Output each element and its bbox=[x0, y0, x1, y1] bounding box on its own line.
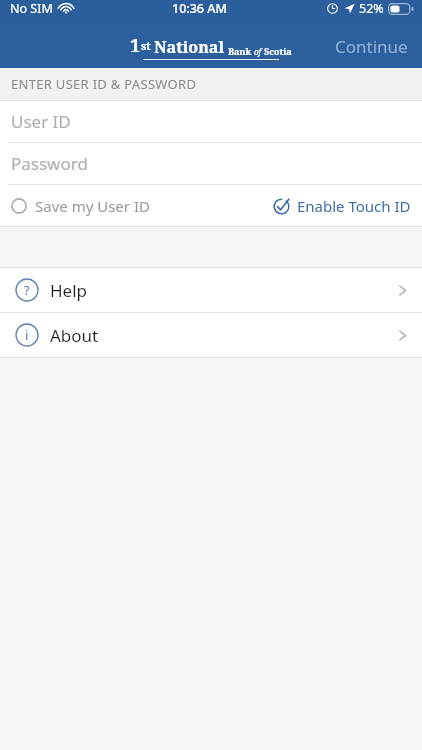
button[interactable]: i bbox=[0, 313, 422, 357]
staticText: 52% bbox=[359, 0, 384, 17]
button[interactable]: Continue bbox=[321, 26, 422, 67]
staticText: Help bbox=[50, 279, 88, 302]
button[interactable]: User ID bbox=[0, 101, 422, 142]
staticText: 10:36 AM bbox=[172, 0, 227, 17]
staticText: Bank bbox=[228, 45, 252, 57]
staticText: Enable Touch ID bbox=[297, 196, 411, 216]
staticText: st bbox=[141, 38, 151, 53]
button[interactable]: Password bbox=[0, 143, 422, 184]
button[interactable]: ? bbox=[0, 268, 422, 312]
staticText: National bbox=[154, 36, 225, 58]
button[interactable]: Save my User ID bbox=[0, 189, 158, 223]
staticText: 1 bbox=[130, 33, 141, 58]
staticText: About bbox=[50, 324, 99, 347]
staticText: Continue bbox=[335, 35, 408, 58]
staticText: of bbox=[254, 46, 262, 57]
button[interactable]: Enable Touch ID bbox=[265, 189, 422, 223]
staticText: ENTER USER ID & PASSWORD bbox=[11, 75, 197, 93]
staticText: i bbox=[25, 326, 29, 344]
staticText: ? bbox=[24, 281, 30, 299]
staticText: No SIM bbox=[10, 0, 53, 17]
staticText: Scotia bbox=[264, 45, 292, 57]
staticText: Save my User ID bbox=[35, 196, 150, 216]
staticText: Password bbox=[11, 152, 88, 175]
staticText: User ID bbox=[11, 110, 71, 133]
